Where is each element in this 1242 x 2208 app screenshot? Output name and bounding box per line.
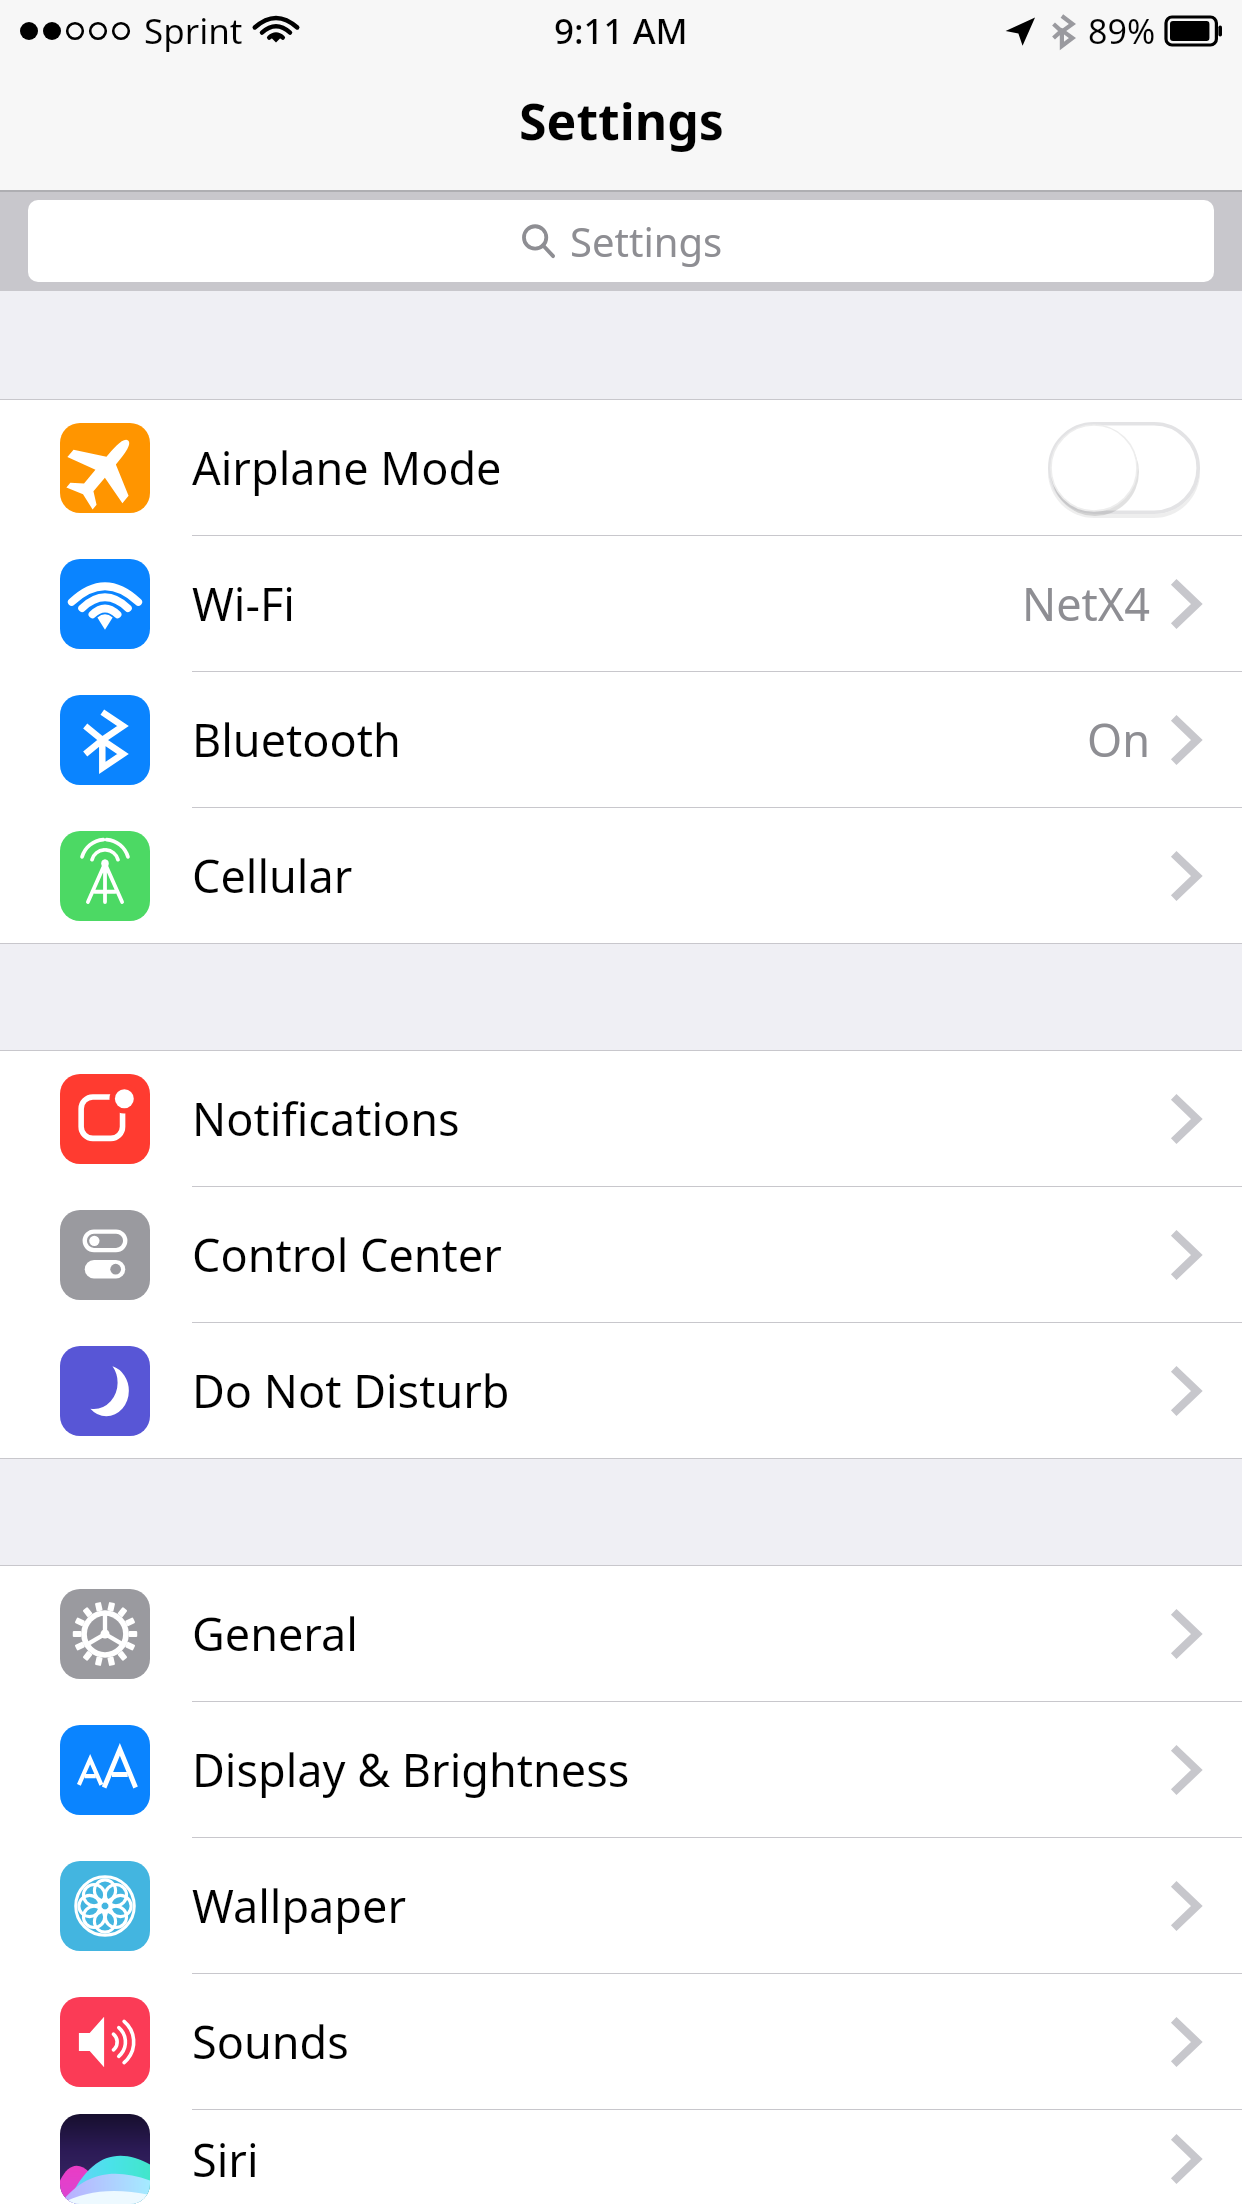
staticText: Control Center: [192, 1224, 502, 1285]
button[interactable]: Bluetooth: [0, 672, 1242, 807]
staticText: Settings: [570, 214, 723, 268]
staticText: Display & Brightness: [192, 1739, 630, 1800]
staticText: 89%: [1088, 8, 1156, 54]
staticText: On: [1087, 709, 1150, 770]
button[interactable]: Display & Brightness: [0, 1702, 1242, 1837]
button[interactable]: General: [0, 1566, 1242, 1701]
button[interactable]: Notifications: [0, 1051, 1242, 1186]
staticText: Airplane Mode: [192, 437, 502, 498]
staticText: Notifications: [192, 1088, 460, 1149]
staticText: General: [192, 1603, 358, 1664]
staticText: 9:11 AM: [554, 7, 688, 55]
button[interactable]: Wallpaper: [0, 1838, 1242, 1973]
button[interactable]: Airplane Mode: [0, 400, 1242, 535]
staticText: Do Not Disturb: [192, 1360, 510, 1421]
button[interactable]: Control Center: [0, 1187, 1242, 1322]
staticText: Sounds: [192, 2011, 349, 2072]
staticText: Settings: [519, 87, 724, 155]
staticText: Bluetooth: [192, 709, 401, 770]
staticText: Sprint: [144, 7, 243, 55]
button[interactable]: Wi-Fi: [0, 536, 1242, 671]
staticText: Siri: [192, 2129, 259, 2190]
button[interactable]: Cellular: [0, 808, 1242, 943]
button[interactable]: Settings: [28, 200, 1214, 282]
staticText: Cellular: [192, 845, 353, 906]
staticText: Wallpaper: [192, 1875, 406, 1936]
staticText: NetX4: [1022, 573, 1150, 634]
button[interactable]: Do Not Disturb: [0, 1323, 1242, 1458]
button[interactable]: Siri: [0, 2110, 1242, 2208]
staticText: Wi-Fi: [192, 573, 295, 634]
button[interactable]: Sounds: [0, 1974, 1242, 2109]
button[interactable]: Airplane Mode toggle, off: [1048, 422, 1200, 514]
